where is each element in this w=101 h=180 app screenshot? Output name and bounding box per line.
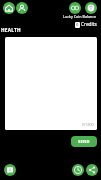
staticText: SEND xyxy=(78,139,90,145)
staticText: HEALTH xyxy=(1,27,21,33)
staticText: 0/1800 xyxy=(82,122,94,127)
staticText: Credits xyxy=(81,21,97,28)
button[interactable]: Profile xyxy=(16,2,28,14)
button[interactable]: Messages xyxy=(4,164,16,176)
button[interactable]: Share xyxy=(86,164,98,176)
button[interactable]: SEND xyxy=(71,136,97,147)
button[interactable]: History xyxy=(72,164,84,176)
button[interactable]: Home xyxy=(3,2,15,14)
button[interactable]: Lucky coins xyxy=(69,2,81,14)
staticText: 0 xyxy=(76,22,79,28)
button[interactable]: Help xyxy=(85,2,97,14)
staticText: Lucky Coin Balance xyxy=(63,14,97,19)
